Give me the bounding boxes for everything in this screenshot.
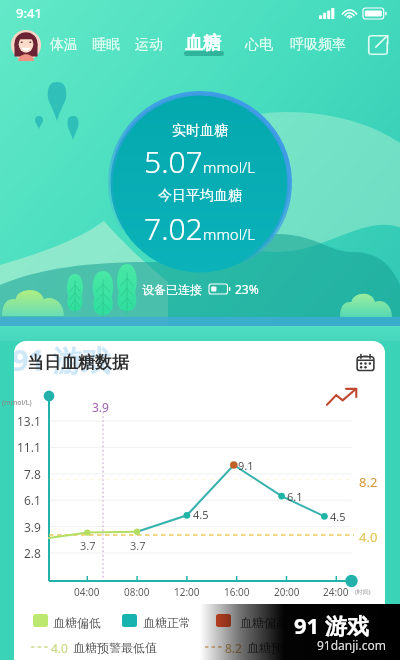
staticText: 6.1 [287, 489, 303, 504]
staticText: 运动 [135, 36, 163, 54]
button[interactable] [122, 614, 137, 627]
staticText: 血糖预警最低值 [73, 640, 157, 655]
staticText: 9:41 [16, 4, 42, 22]
staticText: (时间) [355, 588, 371, 596]
button[interactable]: 呼吸频率 [290, 36, 346, 54]
button[interactable]: 睡眠 [92, 36, 120, 54]
staticText: (mmol/L) [2, 398, 32, 408]
staticText: 11.1 [17, 439, 41, 455]
staticText: 4.0 [51, 640, 68, 656]
staticText: 9.1 [238, 458, 254, 473]
staticText: 血糖 [185, 32, 221, 55]
staticText: 血糖偏低 [53, 615, 101, 630]
staticText: 当日血糖数据 [27, 352, 129, 373]
staticText: 3.9 [24, 519, 41, 535]
staticText: mmol/L [203, 157, 256, 177]
staticText: mmol/L [203, 224, 256, 244]
staticText: 8.2 [225, 640, 242, 656]
staticText: 3.9 [92, 399, 109, 415]
staticText: 5.07 [144, 141, 203, 182]
staticText: 91danji.com [317, 637, 386, 653]
button[interactable]: Profile [10, 29, 42, 61]
staticText: 血糖预警最高值 [247, 640, 331, 655]
button[interactable]: 运动 [135, 36, 163, 54]
button[interactable]: 血糖 [183, 32, 223, 55]
staticText: 91 游戏 [14, 341, 111, 380]
staticText: 呼吸频率 [290, 36, 346, 54]
staticText: 08:00 [124, 585, 150, 599]
staticText: 7.8 [24, 466, 41, 482]
staticText: 4.0 [359, 528, 378, 546]
staticText: 16:00 [224, 585, 250, 599]
staticText: 实时血糖 [172, 122, 228, 140]
staticText: 血糖偏高 [240, 615, 288, 630]
button[interactable] [216, 614, 231, 627]
button[interactable]: 体温 [50, 36, 78, 54]
staticText: 4.5 [193, 507, 209, 522]
staticText: 6.1 [24, 492, 41, 508]
button[interactable]: Calendar [353, 350, 377, 374]
staticText: 8.2 [359, 473, 378, 491]
staticText: 3.7 [80, 538, 96, 553]
staticText: 今日平均血糖 [158, 187, 242, 205]
staticText: 04:00 [74, 585, 100, 599]
button[interactable]: 心电 [245, 36, 273, 54]
staticText: 24:00 [323, 585, 349, 599]
staticText: 23% [235, 281, 259, 297]
staticText: 体温 [50, 36, 78, 54]
button[interactable]: Share [365, 32, 391, 58]
staticText: 设备已连接 [142, 282, 202, 297]
staticText: 20:00 [274, 585, 300, 599]
staticText: 2.8 [24, 545, 41, 561]
staticText: 睡眠 [92, 36, 120, 54]
button[interactable]: Trend [325, 385, 359, 409]
staticText: 7.02 [144, 208, 203, 249]
staticText: 3.7 [130, 538, 146, 553]
button[interactable] [33, 614, 48, 627]
staticText: 血糖正常 [143, 615, 191, 630]
staticText: 4.5 [330, 509, 346, 524]
staticText: 13.1 [17, 413, 41, 429]
staticText: 12:00 [174, 585, 200, 599]
staticText: 心电 [245, 36, 273, 54]
staticText: 91 游戏 [294, 610, 369, 640]
